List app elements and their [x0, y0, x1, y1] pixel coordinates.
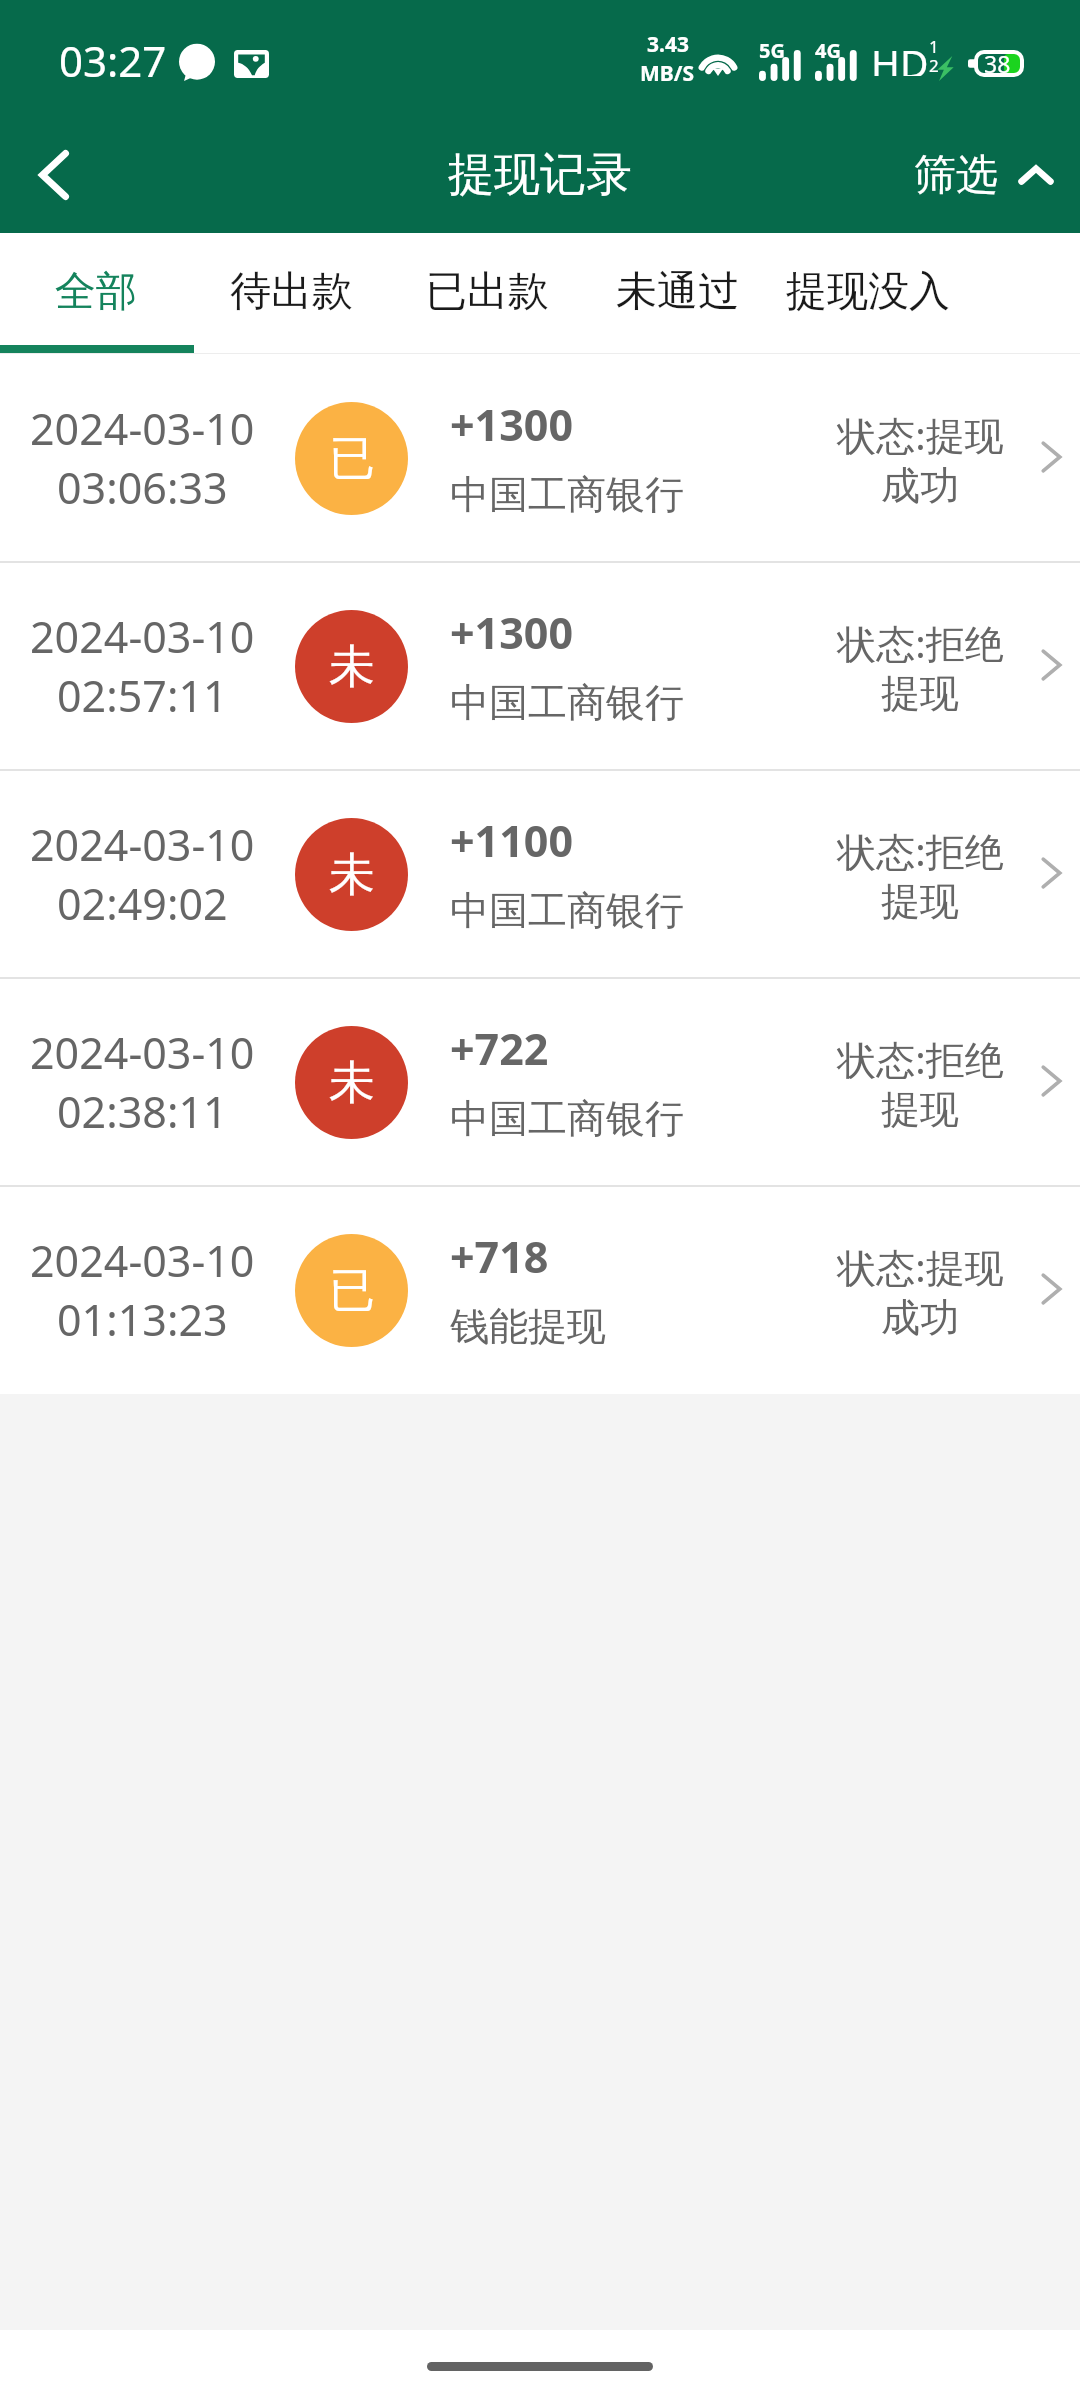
staticText: 中国工商银行 — [450, 1094, 684, 1143]
staticText: 2024-03-10 — [30, 1023, 255, 1082]
staticText: 中国工商银行 — [450, 886, 684, 935]
staticText: HD — [871, 36, 929, 76]
staticText: 未通过 — [616, 266, 739, 318]
staticText: MB/S — [640, 59, 695, 88]
button[interactable]: 2024-03-10 — [0, 354, 1080, 562]
staticText: 02:57:11 — [57, 666, 228, 725]
button[interactable]: 待出款 — [192, 233, 391, 354]
staticText: 全部 — [55, 266, 137, 318]
staticText: +1100 — [450, 811, 573, 870]
staticText: 2024-03-10 — [30, 1231, 255, 1290]
button[interactable]: 未通过 — [584, 233, 771, 354]
staticText: +722 — [450, 1019, 549, 1078]
staticText: +1300 — [450, 395, 573, 454]
staticText: +718 — [450, 1227, 549, 1286]
staticText: 提现 — [881, 669, 959, 718]
staticText: 未 — [329, 638, 375, 696]
staticText: 状态:拒绝 — [837, 616, 1004, 669]
button[interactable]: 已出款 — [391, 233, 584, 354]
staticText: 2024-03-10 — [30, 815, 255, 874]
staticText: 钱能提现 — [450, 1302, 606, 1351]
staticText: 未 — [329, 1054, 375, 1112]
staticText: 成功 — [881, 1293, 959, 1342]
button[interactable]: 提现没入 — [771, 233, 964, 354]
staticText: 状态:拒绝 — [837, 824, 1004, 877]
button[interactable]: 2024-03-10 — [0, 1186, 1080, 1394]
staticText: 提现 — [881, 877, 959, 926]
staticText: 2024-03-10 — [30, 399, 255, 458]
button[interactable]: 2024-03-10 — [0, 978, 1080, 1186]
staticText: 已出款 — [426, 266, 549, 318]
staticText: 中国工商银行 — [450, 678, 684, 727]
staticText: 状态:提现 — [837, 1240, 1004, 1293]
staticText: 待出款 — [230, 266, 353, 318]
staticText: 02:38:11 — [57, 1082, 228, 1141]
button[interactable]: 筛选 — [890, 117, 1080, 233]
staticText: 03:27 — [59, 32, 167, 89]
staticText: 38 — [984, 48, 1011, 79]
staticText: 提现 — [881, 1085, 959, 1134]
staticText: 2 — [929, 54, 939, 77]
staticText: +1300 — [450, 603, 573, 662]
staticText: 5G — [759, 37, 785, 64]
staticText: 状态:拒绝 — [837, 1032, 1004, 1085]
staticText: 已 — [329, 430, 375, 488]
staticText: 3.43 — [647, 30, 689, 59]
staticText: 03:06:33 — [57, 458, 228, 517]
staticText: 提现记录 — [448, 146, 632, 204]
staticText: 02:49:02 — [57, 874, 228, 933]
staticText: 中国工商银行 — [450, 470, 684, 519]
staticText: 4G — [815, 37, 841, 64]
button[interactable]: Back — [0, 117, 110, 233]
staticText: 未 — [329, 846, 375, 904]
staticText: 状态:提现 — [837, 408, 1004, 461]
staticText: 已 — [329, 1262, 375, 1320]
staticText: 筛选 — [914, 149, 998, 202]
button[interactable]: 2024-03-10 — [0, 562, 1080, 770]
staticText: 提现没入 — [786, 266, 950, 318]
button[interactable]: 2024-03-10 — [0, 770, 1080, 978]
staticText: 01:13:23 — [57, 1290, 228, 1349]
button[interactable]: 全部 — [0, 233, 192, 354]
staticText: 2024-03-10 — [30, 607, 255, 666]
staticText: 1 — [929, 35, 939, 58]
staticText: 成功 — [881, 461, 959, 510]
